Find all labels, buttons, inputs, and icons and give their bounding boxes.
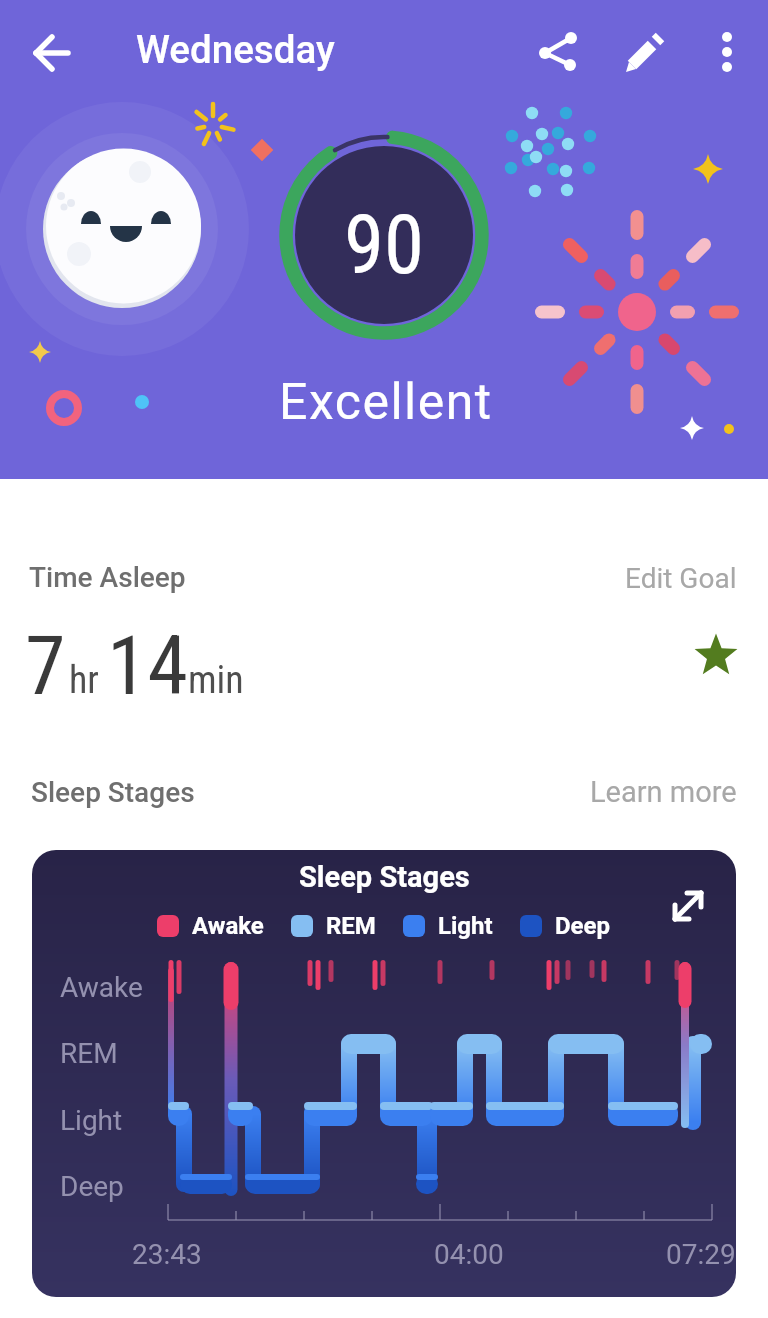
staticText: Sleep Stages [299,860,470,894]
button[interactable] [622,28,670,76]
button[interactable] [703,28,751,76]
staticText: Deep [60,1170,124,1203]
staticText: Time Asleep [29,561,186,594]
staticText: Light [60,1104,123,1137]
staticText: min [188,658,244,703]
staticText: Edit Goal [625,562,737,595]
staticText: hr [69,658,99,703]
staticText: 7 [25,618,66,714]
staticText: Learn more [590,775,737,809]
button[interactable]: Edit Goal [500,559,737,597]
staticText: REM [326,912,376,940]
button[interactable] [534,28,582,76]
staticText: REM [60,1037,118,1070]
button[interactable] [660,878,716,934]
staticText: 07:29 [666,1238,736,1271]
button[interactable] [28,29,76,77]
staticText: Excellent [279,373,493,432]
staticText: Awake [60,971,143,1004]
staticText: Light [438,912,493,940]
staticText: Wednesday [136,27,335,72]
button[interactable]: Learn more [560,773,737,811]
staticText: Sleep Stages [31,776,195,809]
staticText: 90 [344,198,424,293]
staticText: 14 [107,618,188,714]
staticText: 04:00 [434,1238,504,1271]
staticText: Awake [192,912,264,940]
staticText: Deep [555,912,611,940]
staticText: 23:43 [132,1238,202,1271]
